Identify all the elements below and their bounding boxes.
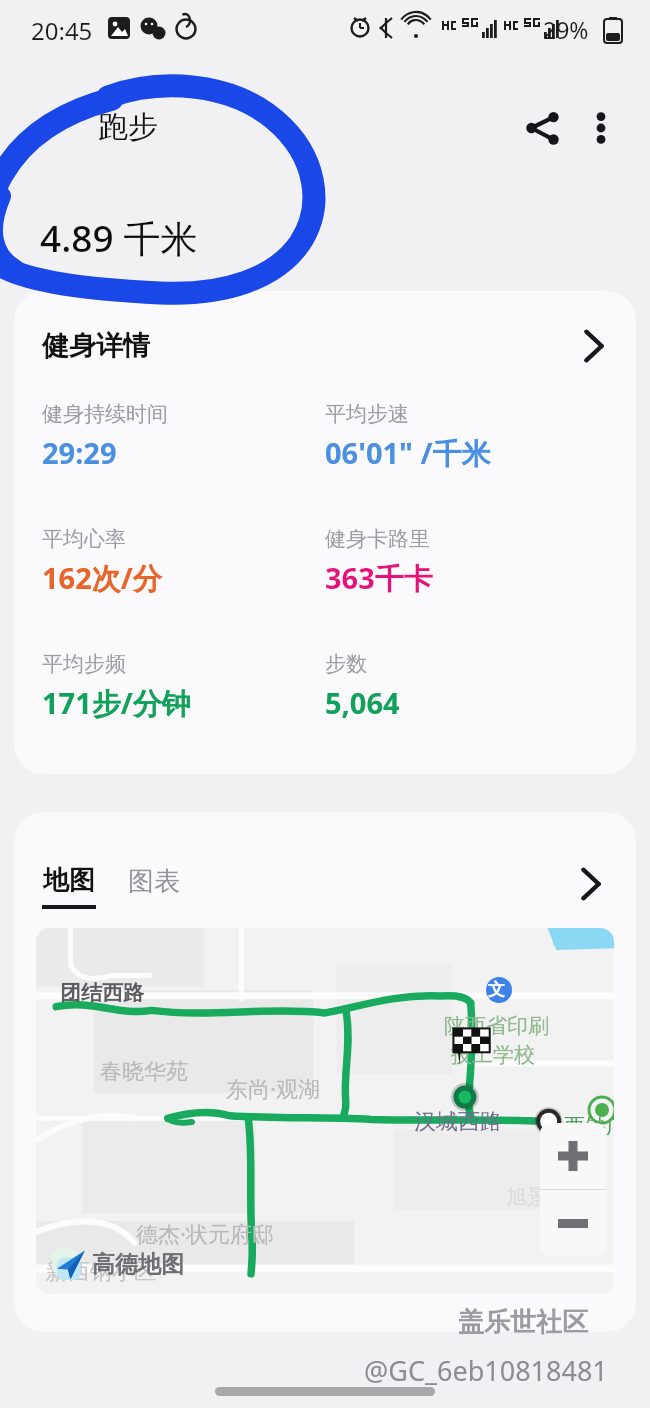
- staticText: 高德地图: [92, 1250, 184, 1279]
- staticText: 363千卡: [325, 558, 433, 598]
- staticText: 汉城西路: [414, 1108, 502, 1136]
- staticText: 团结西路: [60, 980, 144, 1006]
- staticText: 健身卡路里: [325, 526, 430, 552]
- staticText: 地图: [43, 864, 95, 897]
- button[interactable]: Share: [512, 98, 572, 158]
- staticText: 4.89 千米: [40, 212, 198, 263]
- staticText: 平均步频: [42, 651, 126, 677]
- button[interactable]: Open map: [570, 860, 612, 908]
- staticText: @GC_6eb10818481: [364, 1352, 608, 1389]
- staticText: 盖乐世社区: [458, 1306, 588, 1339]
- staticText: 德杰·状元府邸: [136, 1218, 274, 1248]
- staticText: 春晓华苑: [100, 1058, 188, 1086]
- staticText: 健身详情: [42, 329, 150, 363]
- staticText: 旭景新港: [506, 1184, 590, 1210]
- button[interactable]: 健身详情: [14, 291, 636, 401]
- staticText: 健身持续时间: [42, 401, 168, 427]
- button[interactable]: Zoom out: [540, 1190, 606, 1256]
- button[interactable]: Zoom in: [540, 1123, 606, 1189]
- staticText: 西钞广: [564, 1113, 614, 1139]
- staticText: 平均步速: [325, 401, 409, 427]
- staticText: 步数: [325, 651, 367, 677]
- button[interactable]: 地图: [42, 864, 96, 909]
- staticText: 东尚·观湖: [226, 1073, 320, 1103]
- staticText: 新西钢小区: [46, 1258, 156, 1286]
- staticText: 技工学校: [451, 1042, 535, 1068]
- staticText: 平均心率: [42, 526, 126, 552]
- button[interactable]: More options: [572, 98, 630, 158]
- staticText: 29%: [543, 14, 589, 45]
- staticText: 20:45: [31, 14, 93, 47]
- button[interactable]: 图表: [128, 864, 180, 898]
- staticText: 29:29: [42, 433, 117, 472]
- staticText: 06'01" /千米: [325, 433, 491, 473]
- staticText: 跑步: [98, 108, 158, 146]
- button[interactable]: 团结西路: [36, 928, 614, 1294]
- staticText: 162次/分: [42, 558, 162, 598]
- staticText: 陕西省印刷: [444, 1013, 549, 1039]
- staticText: 171步/分钟: [42, 683, 191, 723]
- staticText: 文: [488, 979, 505, 1000]
- staticText: 5,064: [325, 683, 400, 722]
